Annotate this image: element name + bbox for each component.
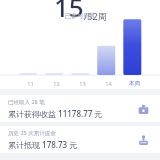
staticText: 历史 25 次累计提金 xyxy=(8,129,56,137)
staticText: 累计抵现 178.73 元 xyxy=(8,139,78,150)
staticText: 已参与周数 xyxy=(65,12,95,20)
staticText: 本周 xyxy=(129,80,140,87)
button[interactable]: 历史 25 次累计提金 xyxy=(0,126,160,153)
staticText: 11 xyxy=(27,80,34,87)
staticText: 13 xyxy=(79,80,86,87)
staticText: 15 xyxy=(54,0,84,24)
button[interactable]: 查看抵现明细 xyxy=(134,131,152,149)
staticText: 累计获得收益 11178.77 元 xyxy=(8,108,103,119)
button[interactable]: 已经取入 28 笔 xyxy=(0,95,160,122)
staticText: 已经取入 28 笔 xyxy=(8,98,45,106)
staticText: 12 xyxy=(53,80,60,87)
staticText: 14 xyxy=(105,80,112,87)
staticText: /52周 xyxy=(84,10,107,22)
button[interactable]: 查看收益明细 xyxy=(134,100,152,118)
